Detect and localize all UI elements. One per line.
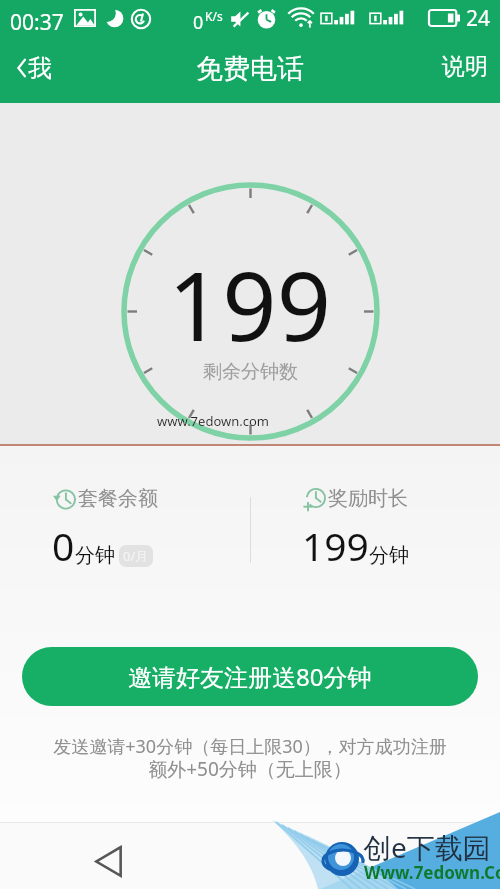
staticText: 套餐余额 bbox=[78, 486, 158, 511]
staticText: K/s bbox=[205, 8, 223, 24]
staticText: 剩余分钟数 bbox=[203, 360, 298, 384]
staticText: 创e下载园 bbox=[363, 828, 491, 866]
button[interactable]: 我 bbox=[9, 49, 68, 91]
staticText: www.7edown.com bbox=[157, 412, 269, 430]
staticText: 邀请好友注册送80分钟 bbox=[128, 660, 372, 693]
staticText: 199 bbox=[168, 239, 332, 368]
staticText: 额外+50分钟（无上限） bbox=[148, 756, 352, 782]
staticText: 199 bbox=[302, 519, 369, 572]
staticText: 24 bbox=[466, 4, 491, 33]
staticText: 分钟 bbox=[369, 543, 409, 568]
staticText: 00:37 bbox=[10, 8, 64, 37]
staticText: 0/月 bbox=[123, 547, 149, 565]
button[interactable]: 邀请好友注册送80分钟 bbox=[22, 647, 478, 706]
staticText: 0 bbox=[52, 519, 75, 572]
staticText: 说明 bbox=[442, 52, 488, 81]
staticText: 我 bbox=[28, 53, 52, 83]
staticText: 奖励时长 bbox=[328, 486, 408, 511]
button[interactable]: 说明 bbox=[426, 48, 500, 89]
button[interactable]: Back bbox=[84, 837, 132, 885]
staticText: 分钟 bbox=[75, 543, 115, 568]
staticText: Www.7edown.Com bbox=[364, 861, 500, 884]
staticText: 免费电话 bbox=[196, 52, 304, 86]
staticText: 0 bbox=[193, 10, 204, 35]
staticText: 发送邀请+30分钟（每日上限30），对方成功注册 bbox=[53, 734, 447, 759]
